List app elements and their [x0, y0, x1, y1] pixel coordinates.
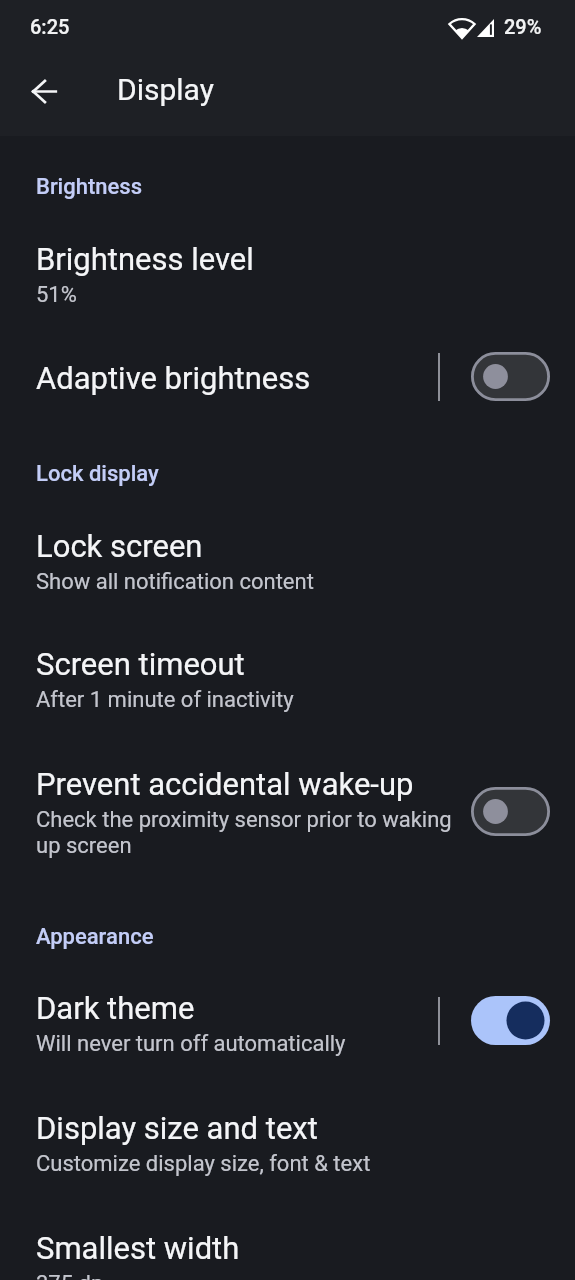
staticText: 29%	[504, 15, 542, 38]
button[interactable]: Prevent accidental wake-up	[0, 766, 575, 859]
staticText: Lock display	[36, 461, 159, 487]
button[interactable]: Smallest width	[0, 1230, 575, 1280]
staticText: Customize display size, font & text	[36, 1151, 371, 1177]
button[interactable]: Screen timeout	[0, 646, 575, 713]
staticText: Lock screen	[36, 528, 203, 564]
button[interactable]: Switch off	[471, 352, 550, 401]
staticText: Display	[117, 72, 214, 107]
button[interactable]: Lock screen	[0, 528, 575, 595]
button[interactable]: Back	[18, 65, 70, 117]
staticText: Screen timeout	[36, 646, 245, 682]
staticText: 375 dp	[36, 1271, 104, 1280]
staticText: Check the proximity sensor prior to waki…	[36, 807, 455, 859]
staticText: Prevent accidental wake-up	[36, 766, 414, 802]
staticText: Adaptive brightness	[36, 360, 311, 396]
staticText: Dark theme	[36, 990, 195, 1026]
staticText: Show all notification content	[36, 569, 314, 595]
staticText: Smallest width	[36, 1230, 240, 1266]
staticText: Brightness level	[36, 241, 254, 277]
staticText: Brightness	[36, 174, 143, 200]
button[interactable]: Switch off	[471, 787, 550, 836]
staticText: Display size and text	[36, 1110, 318, 1146]
button[interactable]: Adaptive brightness	[0, 360, 575, 396]
button[interactable]: Dark theme	[0, 990, 575, 1057]
button[interactable]: Switch on	[471, 996, 550, 1045]
staticText: 51%	[36, 282, 77, 308]
staticText: Will never turn off automatically	[36, 1031, 346, 1057]
button[interactable]: Brightness level	[0, 241, 575, 308]
button[interactable]: Display size and text	[0, 1110, 575, 1177]
staticText: After 1 minute of inactivity	[36, 687, 294, 713]
staticText: 6:25	[30, 15, 70, 38]
staticText: Appearance	[36, 924, 154, 950]
